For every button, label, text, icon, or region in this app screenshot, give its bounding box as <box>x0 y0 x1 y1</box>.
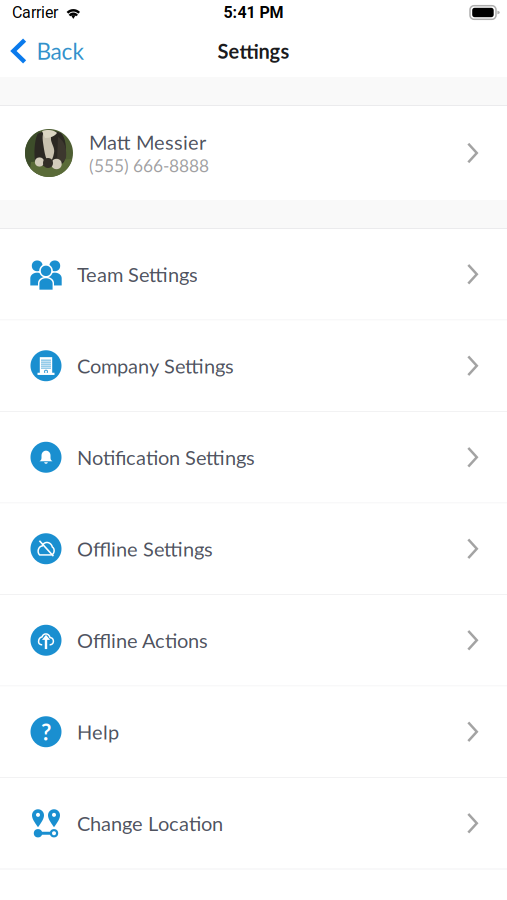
staticText: ? <box>41 718 51 745</box>
button[interactable]: Matt Messier <box>0 106 507 200</box>
button[interactable]: Team Settings <box>0 229 507 320</box>
staticText: Help <box>77 720 119 744</box>
staticText: Notification Settings <box>77 445 255 469</box>
staticText: Settings <box>217 39 289 63</box>
button[interactable]: ? <box>0 686 507 778</box>
staticText: Matt Messier <box>89 130 206 154</box>
button[interactable]: Offline Settings <box>0 503 507 595</box>
staticText: Offline Settings <box>77 537 213 561</box>
staticText: Team Settings <box>77 262 198 286</box>
staticText: Back <box>36 37 84 65</box>
button[interactable]: Offline Actions <box>0 595 507 686</box>
button[interactable]: Company Settings <box>0 320 507 412</box>
staticText: Change Location <box>77 811 223 835</box>
button[interactable]: Change Location <box>0 778 507 869</box>
staticText: Carrier <box>12 3 58 22</box>
staticText: Offline Actions <box>77 628 208 652</box>
button[interactable]: Back <box>0 29 96 73</box>
button[interactable]: Notification Settings <box>0 412 507 503</box>
staticText: 5:41 PM <box>223 3 283 22</box>
staticText: Company Settings <box>77 354 234 378</box>
staticText: (555) 666-8888 <box>89 155 209 176</box>
